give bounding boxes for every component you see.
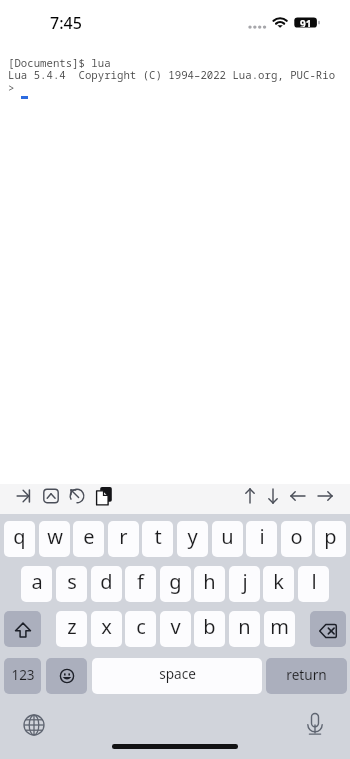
staticText: q [13, 523, 26, 550]
button[interactable]: return [266, 658, 347, 694]
button[interactable]: h [194, 566, 225, 602]
staticText: r [119, 523, 128, 550]
button[interactable]: Right [313, 484, 337, 508]
staticText: u [221, 523, 234, 550]
staticText: b [203, 613, 216, 640]
button[interactable]: d [91, 566, 122, 602]
button[interactable]: x [91, 611, 122, 647]
button[interactable]: n [229, 611, 260, 647]
button[interactable]: i [246, 521, 277, 557]
button[interactable]: Dictation [303, 713, 327, 737]
button[interactable]: s [56, 566, 87, 602]
staticText: t [154, 523, 162, 550]
staticText: s [67, 568, 77, 595]
staticText: 91 [300, 17, 312, 27]
staticText: space [159, 664, 196, 683]
button[interactable]: e [73, 521, 104, 557]
button[interactable]: t [142, 521, 173, 557]
staticText: e [83, 523, 95, 550]
staticText: c [136, 613, 146, 640]
staticText: return [286, 665, 327, 684]
button[interactable]: m [264, 611, 295, 647]
staticText: w [47, 523, 63, 550]
staticText: z [67, 613, 77, 640]
button[interactable]: Undo [64, 483, 90, 509]
staticText: f [137, 568, 144, 595]
staticText: [Documents]$ lua [8, 56, 111, 71]
staticText: d [100, 568, 113, 595]
staticText: a [31, 568, 43, 595]
button[interactable]: 123 [4, 658, 41, 694]
button[interactable]: b [194, 611, 225, 647]
button[interactable]: y [177, 521, 208, 557]
staticText: i [259, 523, 265, 550]
staticText: > [8, 81, 15, 96]
button[interactable]: j [229, 566, 260, 602]
button[interactable]: Change keyboard [22, 713, 46, 737]
button[interactable]: Left [286, 484, 310, 508]
button[interactable]: q [4, 521, 35, 557]
button[interactable]: v [160, 611, 191, 647]
button[interactable]: w [39, 521, 70, 557]
button[interactable]: Emoji [46, 658, 87, 694]
button[interactable]: Shift [4, 611, 41, 647]
button[interactable]: u [212, 521, 243, 557]
staticText: j [242, 568, 248, 595]
button[interactable]: a [21, 566, 52, 602]
button[interactable]: p [315, 521, 346, 557]
button[interactable]: z [56, 611, 87, 647]
button[interactable]: k [263, 566, 294, 602]
staticText: n [238, 613, 251, 640]
staticText: x [101, 613, 112, 640]
staticText: g [169, 568, 182, 595]
staticText: y [187, 523, 198, 550]
staticText: h [203, 568, 216, 595]
button[interactable]: g [160, 566, 191, 602]
staticText: o [290, 523, 303, 550]
button[interactable]: Down [261, 484, 285, 508]
button[interactable]: l [298, 566, 329, 602]
staticText: 7:45 [50, 12, 82, 34]
staticText: Lua 5.4.4 Copyright (C) 1994–2022 Lua.or… [8, 68, 336, 83]
staticText: p [324, 523, 337, 550]
button[interactable]: o [281, 521, 312, 557]
staticText: m [270, 613, 289, 640]
button[interactable]: c [125, 611, 156, 647]
staticText: l [311, 568, 317, 595]
staticText: 123 [11, 666, 35, 684]
staticText: v [170, 613, 181, 640]
button[interactable]: Backspace [310, 611, 346, 647]
button[interactable]: space [92, 658, 262, 694]
button[interactable]: f [125, 566, 156, 602]
button[interactable]: Tab [11, 483, 37, 509]
button[interactable]: Escape [38, 483, 64, 509]
button[interactable]: Up [238, 484, 262, 508]
button[interactable]: r [108, 521, 139, 557]
button[interactable]: Paste [91, 483, 117, 509]
staticText: k [273, 568, 284, 595]
